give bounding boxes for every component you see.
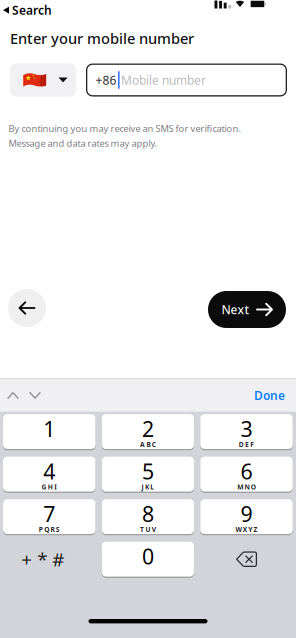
staticText: GHI [41, 482, 57, 491]
staticText: Enter your mobile number [10, 28, 194, 48]
staticText: Next [221, 301, 249, 317]
staticText: ABC [140, 440, 156, 449]
button[interactable]: 8 [102, 499, 194, 534]
staticText: 2 [142, 414, 154, 443]
button[interactable]: Next [208, 291, 286, 328]
button[interactable] [10, 63, 76, 96]
staticText: 1 [43, 414, 55, 443]
staticText: 7 [43, 499, 55, 528]
button[interactable]: Done [254, 387, 296, 403]
staticText: Done [254, 387, 285, 403]
button[interactable]: Search [3, 2, 52, 18]
staticText: DEF [239, 440, 254, 449]
button[interactable]: + * # [3, 542, 96, 577]
button[interactable] [200, 542, 293, 577]
button[interactable] [2, 379, 24, 412]
staticText: WXYZ [235, 525, 257, 534]
button[interactable]: 4 [3, 457, 96, 492]
button[interactable]: 6 [200, 457, 293, 492]
button[interactable]: 0 [102, 542, 194, 577]
button[interactable]: 2 [102, 414, 194, 449]
staticText: By continuing you may receive an SMS for… [8, 122, 241, 135]
staticText: 5 [142, 457, 154, 485]
staticText: 9 [240, 499, 252, 528]
staticText: Mobile number [121, 72, 206, 88]
staticText: Search [12, 2, 52, 18]
staticText: +86 [95, 72, 116, 88]
staticText: 3 [240, 414, 252, 443]
staticText: 6 [240, 457, 252, 485]
button[interactable] [24, 379, 46, 412]
button[interactable]: 3 [200, 414, 293, 449]
staticText: 0 [142, 542, 154, 570]
button[interactable]: 5 [102, 457, 194, 492]
staticText: Message and data rates may apply. [8, 137, 157, 149]
button[interactable] [8, 289, 46, 327]
staticText: 8 [142, 499, 154, 528]
button[interactable]: 1 [3, 414, 96, 449]
button[interactable]: +86 [86, 63, 287, 96]
staticText: JKL [142, 482, 154, 491]
staticText: 4 [43, 457, 55, 485]
staticText: PQRS [39, 525, 60, 534]
button[interactable]: 7 [3, 499, 96, 534]
staticText: MNO [237, 482, 256, 491]
staticText: + * # [21, 547, 64, 572]
button[interactable]: 9 [200, 499, 293, 534]
staticText: TUV [140, 525, 156, 534]
